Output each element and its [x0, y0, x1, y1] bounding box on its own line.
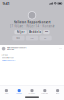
button[interactable]: Grupper	[26, 88, 38, 94]
button[interactable]: Inlägg	[12, 36, 24, 40]
button[interactable]: Följer	[14, 30, 27, 34]
staticText: Hallaton Rapportkonsert	[7, 47, 27, 49]
staticText: Hallaton Rapportkonsert	[13, 20, 50, 24]
button[interactable]: Meddela	[28, 30, 42, 34]
staticText: 3 tim · Offentligt	[7, 49, 14, 50]
staticText: 9:41	[2, 1, 9, 6]
button[interactable]: Hem	[0, 88, 13, 94]
button[interactable]: Avisering	[38, 88, 51, 94]
staticText: Meny	[56, 92, 60, 94]
staticText: •••	[59, 48, 62, 50]
button[interactable]: Mer	[39, 36, 52, 40]
staticText: Meddela	[28, 30, 41, 34]
staticText: Mer	[44, 37, 47, 39]
button[interactable]: Hallaton Rapportkonsert	[0, 45, 64, 50]
staticText: Följer	[17, 30, 25, 34]
staticText: Avisering	[41, 92, 48, 94]
button[interactable]: hallaton.se/konsert	[2, 59, 15, 61]
staticText: Hem	[5, 92, 8, 94]
staticText: hallaton.se/konsert	[2, 59, 15, 61]
button[interactable]: Vänner	[13, 88, 26, 94]
staticText: 27 följare · Följer 14 · Konstnär	[9, 24, 54, 28]
button[interactable]: Meny	[51, 88, 64, 94]
button[interactable]: Foton	[26, 36, 38, 40]
staticText: Inlägg	[16, 37, 20, 39]
staticText: Vänner	[16, 92, 22, 94]
staticText: Foton	[30, 37, 34, 39]
staticText: •••	[45, 30, 48, 34]
staticText: Grupper	[28, 92, 35, 94]
staticText: Lördag	[2, 54, 8, 56]
staticText: Konsert i kyrkan	[2, 57, 14, 59]
button[interactable]: •••	[43, 30, 50, 34]
